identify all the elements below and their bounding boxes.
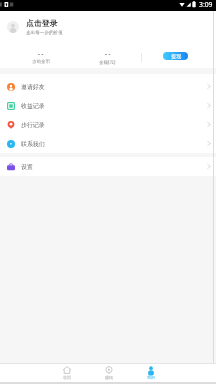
staticText: 联系我们 — [21, 140, 45, 147]
staticText: - - — [38, 50, 44, 57]
button[interactable]: 首页 — [46, 364, 88, 382]
button[interactable]: 提现 — [163, 52, 188, 60]
button[interactable]: 我的 — [130, 364, 172, 382]
staticText: 首页 — [63, 375, 72, 380]
button[interactable]: 步行记录 — [0, 115, 216, 134]
staticText: 点击登录 — [26, 18, 58, 28]
button[interactable]: 赚钱 — [88, 364, 130, 382]
staticText: 邀请好友 — [21, 83, 45, 90]
button[interactable]: 点击登录 — [0, 11, 216, 43]
staticText: 提现 — [171, 53, 181, 59]
staticText: 金额(元) — [99, 59, 116, 65]
staticText: 收益记录 — [21, 102, 45, 109]
staticText: 我的 — [147, 375, 156, 380]
staticText: 当前金币 — [32, 59, 50, 65]
button[interactable]: 设置 — [0, 157, 216, 176]
staticText: 走出每一步的价值 — [26, 30, 63, 36]
staticText: 设置 — [21, 163, 33, 170]
button[interactable]: 邀请好友 — [0, 77, 216, 96]
staticText: 3:09 — [199, 0, 213, 9]
button[interactable]: 联系我们 — [0, 134, 216, 153]
staticText: 步行记录 — [21, 121, 45, 128]
staticText: - - — [105, 50, 111, 57]
staticText: 赚钱 — [105, 375, 114, 380]
button[interactable]: 收益记录 — [0, 96, 216, 115]
